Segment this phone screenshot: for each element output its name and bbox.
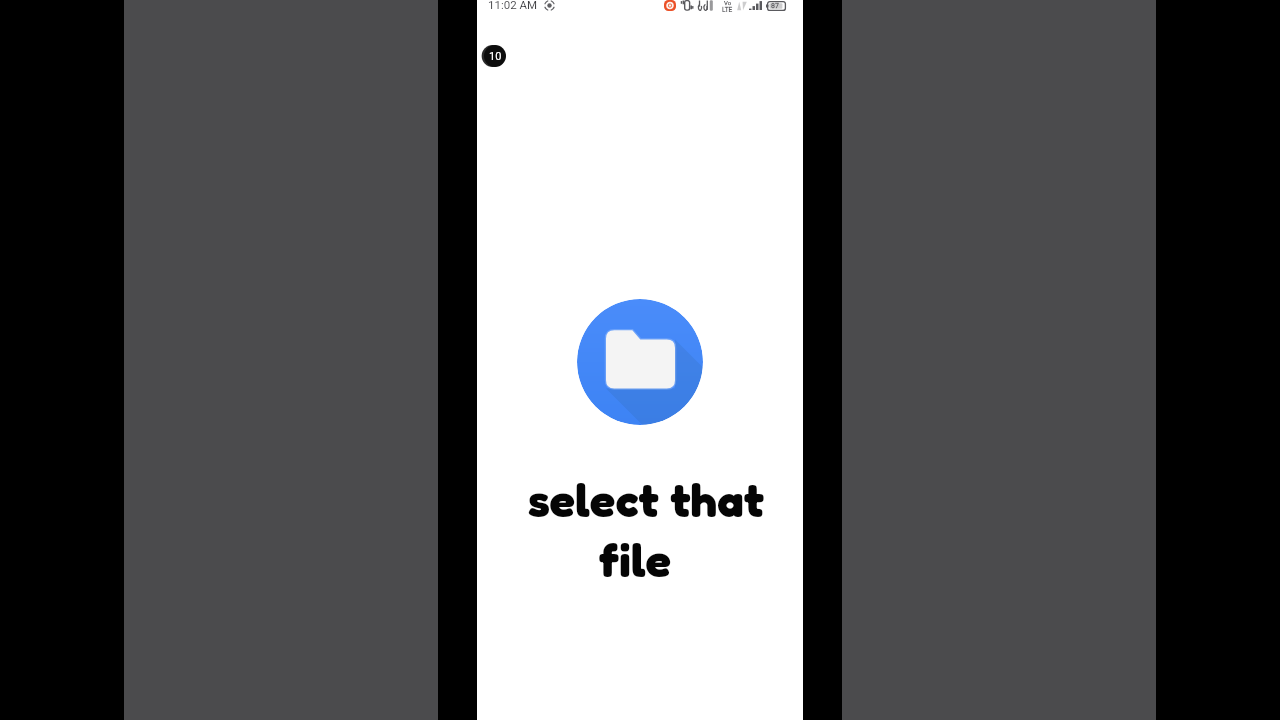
button[interactable]: Open Files app xyxy=(577,299,703,425)
staticText: file xyxy=(505,531,765,588)
staticText: LTE xyxy=(722,6,733,12)
button[interactable]: Screen recording timer xyxy=(484,45,506,67)
staticText: select that xyxy=(516,471,776,528)
staticText: 11:02 AM xyxy=(488,0,538,11)
staticText: 87 xyxy=(771,2,779,10)
staticText: 10 xyxy=(489,50,502,63)
staticText: Vo xyxy=(724,0,732,6)
